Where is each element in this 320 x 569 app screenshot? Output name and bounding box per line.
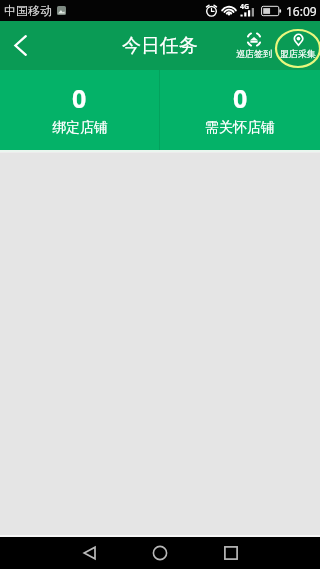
button[interactable]: 0 — [0, 70, 159, 150]
button[interactable]: 盟店采集 — [276, 21, 320, 70]
button[interactable]: Back — [67, 537, 111, 569]
staticText: 4G — [240, 2, 250, 12]
button[interactable]: 巡店签到 — [231, 21, 276, 70]
button[interactable]: 返回 — [0, 21, 40, 70]
staticText: 绑定店铺 — [52, 119, 108, 137]
button[interactable]: Recents — [209, 537, 253, 569]
button[interactable]: 0 — [160, 70, 320, 150]
staticText: 需关怀店铺 — [205, 119, 275, 137]
staticText: 今日任务 — [122, 34, 198, 58]
button[interactable]: Home — [138, 537, 182, 569]
staticText: 巡店签到 — [236, 48, 272, 59]
staticText: 16:09 — [286, 3, 317, 19]
staticText: 中国移动 — [4, 3, 52, 18]
staticText: 0 — [233, 81, 248, 115]
staticText: 盟店采集 — [280, 48, 316, 59]
staticText: 0 — [72, 81, 87, 115]
